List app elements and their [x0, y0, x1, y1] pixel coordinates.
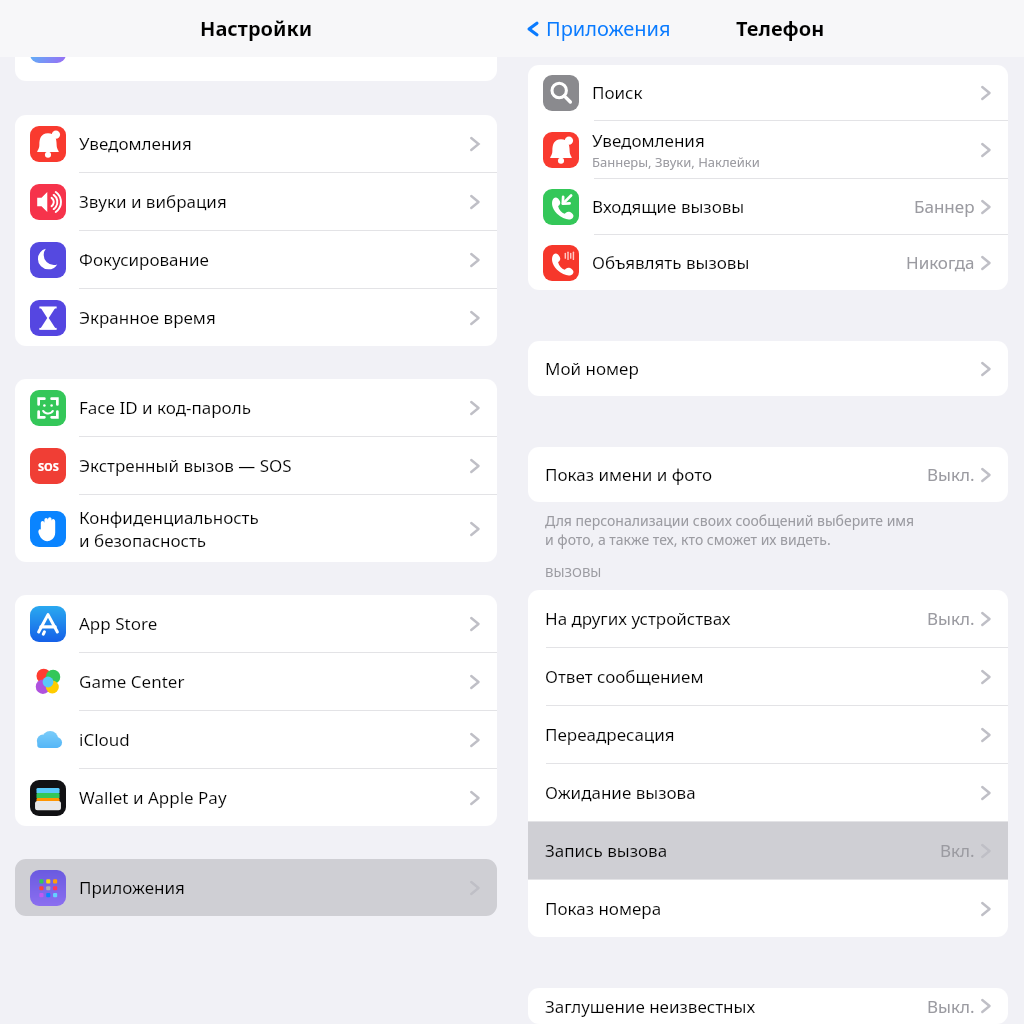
- button[interactable]: На других устройствах: [528, 590, 1008, 647]
- staticText: Объявлять вызовы: [592, 251, 750, 274]
- staticText: Вкл.: [940, 839, 975, 862]
- staticText: Для персонализации своих сообщений выбер…: [545, 511, 915, 549]
- staticText: App Store: [79, 612, 158, 635]
- staticText: Конфиденциальность и безопасность: [79, 506, 259, 552]
- button[interactable]: SOS: [15, 437, 497, 494]
- button[interactable]: iCloud: [15, 711, 497, 768]
- staticText: Фокусирование: [79, 248, 209, 271]
- button[interactable]: Приложения: [15, 859, 497, 916]
- staticText: Заглушение неизвестных: [545, 995, 756, 1018]
- button[interactable]: Конфиденциальность и безопасность: [15, 495, 497, 562]
- button[interactable]: Game Center: [15, 653, 497, 710]
- button[interactable]: App Store: [15, 595, 497, 652]
- button[interactable]: Фокусирование: [15, 231, 497, 288]
- staticText: Звуки и вибрация: [79, 190, 227, 213]
- staticText: Баннеры, Звуки, Наклейки: [592, 153, 760, 171]
- staticText: Баннер: [914, 195, 975, 218]
- button[interactable]: Показ имени и фото: [528, 447, 1008, 502]
- button[interactable]: Заглушение неизвестных: [528, 988, 1008, 1024]
- button[interactable]: [15, 57, 497, 81]
- button[interactable]: Запись вызова: [528, 822, 1008, 879]
- button[interactable]: Face ID и код-пароль: [15, 379, 497, 436]
- staticText: Выкл.: [927, 995, 975, 1018]
- staticText: ВЫЗОВЫ: [545, 563, 602, 581]
- button[interactable]: Ответ сообщением: [528, 648, 1008, 705]
- button[interactable]: Объявлять вызовы: [528, 235, 1008, 290]
- staticText: Ответ сообщением: [545, 665, 704, 688]
- staticText: Показ имени и фото: [545, 463, 713, 486]
- staticText: Face ID и код-пароль: [79, 396, 251, 419]
- staticText: Показ номера: [545, 897, 662, 920]
- staticText: Поиск: [592, 81, 643, 104]
- staticText: Приложения: [79, 876, 185, 899]
- staticText: Телефон: [736, 15, 825, 42]
- staticText: Wallet и Apple Pay: [79, 786, 227, 809]
- button[interactable]: Приложения: [522, 9, 675, 48]
- staticText: Входящие вызовы: [592, 195, 745, 218]
- button[interactable]: Входящие вызовы: [528, 179, 1008, 234]
- staticText: Экстренный вызов — SOS: [79, 454, 292, 477]
- staticText: Запись вызова: [545, 839, 668, 862]
- staticText: Game Center: [79, 670, 185, 693]
- button[interactable]: Wallet и Apple Pay: [15, 769, 497, 826]
- button[interactable]: Переадресация: [528, 706, 1008, 763]
- staticText: Экранное время: [79, 306, 216, 329]
- button[interactable]: Экранное время: [15, 289, 497, 346]
- button[interactable]: Уведомления: [15, 115, 497, 172]
- staticText: Переадресация: [545, 723, 675, 746]
- button[interactable]: Уведомления: [528, 121, 1008, 178]
- staticText: На других устройствах: [545, 607, 731, 630]
- button[interactable]: Поиск: [528, 65, 1008, 120]
- staticText: Уведомления: [592, 129, 705, 152]
- staticText: Уведомления: [79, 132, 192, 155]
- staticText: Настройки: [200, 15, 313, 42]
- staticText: Выкл.: [927, 607, 975, 630]
- staticText: Ожидание вызова: [545, 781, 696, 804]
- staticText: Мой номер: [545, 357, 639, 380]
- button[interactable]: Показ номера: [528, 880, 1008, 937]
- staticText: Никогда: [906, 251, 975, 274]
- button[interactable]: Ожидание вызова: [528, 764, 1008, 821]
- button[interactable]: Звуки и вибрация: [15, 173, 497, 230]
- staticText: Выкл.: [927, 463, 975, 486]
- staticText: Приложения: [546, 15, 671, 42]
- button[interactable]: Мой номер: [528, 341, 1008, 396]
- staticText: iCloud: [79, 728, 130, 751]
- staticText: SOS: [38, 459, 59, 474]
